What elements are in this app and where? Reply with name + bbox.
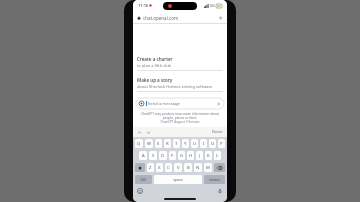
button[interactable]: Dictate [217,188,223,194]
staticText: Make up a story [137,77,173,83]
button[interactable]: S [149,151,157,160]
button[interactable]: Secure connection [133,11,227,24]
staticText: Z [149,165,152,171]
staticText: Create a charter [137,56,173,62]
staticText: B [187,165,190,171]
staticText: space [173,177,183,182]
staticText: L [216,153,219,159]
staticText: H [189,153,193,159]
staticText: 11:16 [138,3,149,8]
button[interactable]: C [165,163,172,172]
staticText: I [203,141,205,147]
other: Send [217,102,221,106]
button[interactable]: ChatGPT August 3 Version [160,120,200,124]
staticText: 5G [210,3,215,8]
staticText: G [180,153,184,159]
staticText: P [220,141,223,147]
button[interactable]: B [184,163,192,172]
other: Page menu [219,16,223,20]
button[interactable]: Make up a story [133,74,227,95]
button[interactable]: R [164,139,171,148]
staticText: D [161,153,165,159]
button[interactable]: Attach [136,98,224,109]
button[interactable]: I [200,139,207,148]
staticText: chat.openai.com [143,15,179,21]
button[interactable]: N [194,163,202,172]
button[interactable]: D [159,151,167,160]
button[interactable]: T [173,139,180,148]
staticText: Y [184,141,187,147]
button[interactable]: Keyboard key [135,163,145,172]
button[interactable]: Keyboard key [214,163,225,172]
button[interactable]: X [156,163,163,172]
button[interactable]: W [145,139,153,148]
staticText: Q [137,141,141,147]
button[interactable]: K [205,151,212,160]
button[interactable]: return [204,175,225,184]
other: Attach [139,101,144,106]
button[interactable]: J [196,151,203,160]
button[interactable]: P [218,139,225,148]
staticText: ChatGPT may produce inaccurate informati… [139,112,221,120]
staticText: 123 [140,177,147,182]
button[interactable]: 123 [135,175,152,184]
staticText: E [157,141,160,147]
button[interactable]: U [191,139,198,148]
button[interactable]: space [154,175,202,184]
staticText: return [209,177,220,182]
button[interactable]: O [209,139,216,148]
staticText: M [206,165,210,171]
staticText: about Sherlock Holmes solving software s… [137,84,223,89]
button[interactable]: Q [135,139,143,148]
staticText: C [167,165,170,171]
button[interactable]: H [187,151,194,160]
button[interactable]: Z [147,163,154,172]
button[interactable]: G [178,151,185,160]
staticText: J [199,153,201,159]
button[interactable]: V [174,163,182,172]
staticText: K [207,153,210,159]
button[interactable]: M [204,163,212,172]
button[interactable]: Emoji [137,188,143,194]
staticText: Done [212,129,223,135]
staticText: O [211,141,215,147]
button[interactable]: Next field [146,130,151,135]
staticText: U [193,141,197,147]
staticText: X [158,165,161,171]
staticText: N [196,165,200,171]
button[interactable]: F [169,151,176,160]
staticText: V [177,165,180,171]
staticText: Send a message [148,101,180,107]
staticText: R [166,141,169,147]
staticText: T [175,141,178,147]
staticText: W [147,141,151,147]
button[interactable]: Create a charter [133,53,227,74]
staticText: A [142,153,145,159]
button[interactable]: Previous field [137,130,142,135]
button[interactable]: L [214,151,221,160]
button[interactable]: E [155,139,162,148]
staticText: S [152,153,155,159]
staticText: to plan a fifth club [137,63,172,68]
button[interactable]: A [139,151,147,160]
staticText: F [171,153,174,159]
other: Secure connection [137,16,141,20]
button[interactable]: Done [212,129,227,135]
button[interactable]: Y [182,139,189,148]
